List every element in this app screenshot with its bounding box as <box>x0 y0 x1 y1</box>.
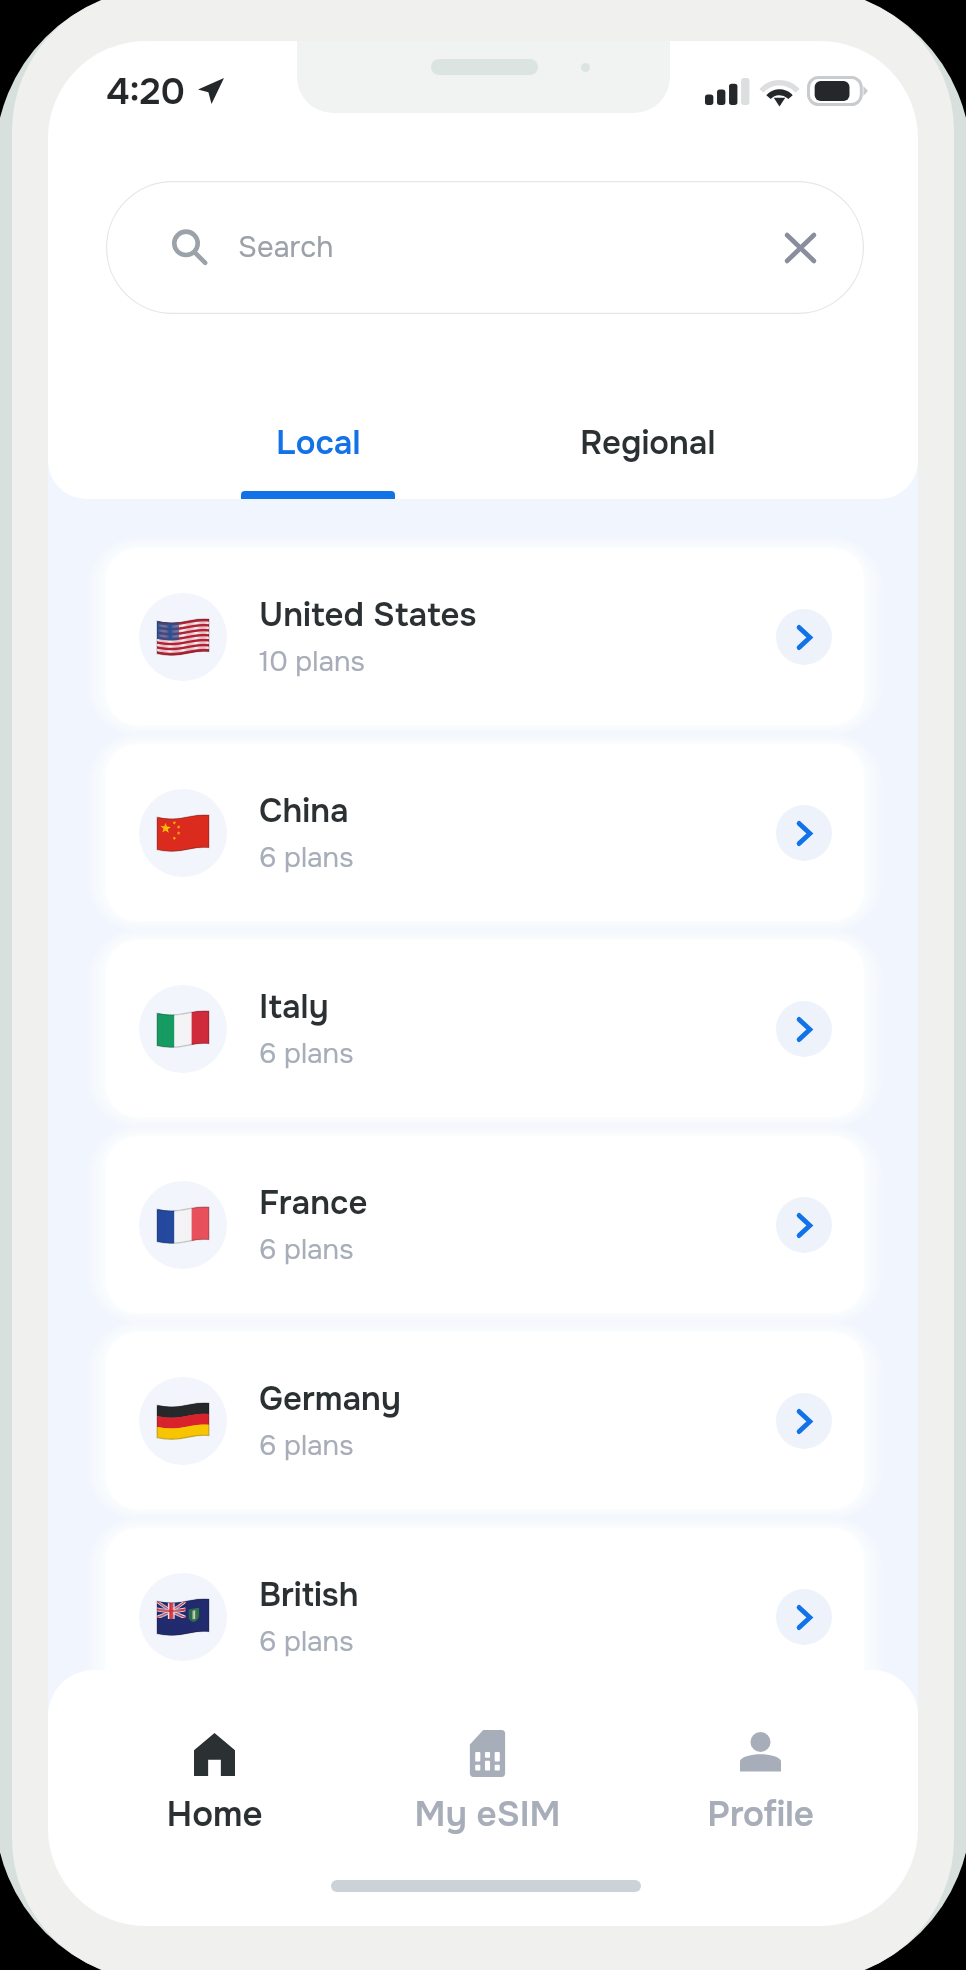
button[interactable]: Open Italy <box>776 1001 832 1057</box>
button[interactable]: United States <box>106 548 864 725</box>
staticText: 6 plans <box>259 1428 354 1464</box>
staticText: 6 plans <box>259 1624 354 1660</box>
button[interactable]: Open Germany <box>776 1393 832 1449</box>
button[interactable]: Open United States <box>776 609 832 665</box>
staticText: Profile <box>707 1792 814 1837</box>
staticText: My eSIM <box>414 1792 561 1837</box>
staticText: Germany <box>259 1378 401 1420</box>
button[interactable]: British <box>106 1528 864 1705</box>
button[interactable]: Italy <box>106 940 864 1117</box>
button[interactable]: Home <box>78 1730 351 1837</box>
staticText: Search <box>238 229 334 266</box>
staticText: 6 plans <box>259 1232 354 1268</box>
button[interactable]: My eSIM <box>351 1730 624 1837</box>
button[interactable]: Open China <box>776 805 832 861</box>
staticText: 6 plans <box>259 1036 354 1072</box>
staticText: 10 plans <box>259 644 365 680</box>
staticText: Regional <box>580 422 716 464</box>
staticText: United States <box>259 594 477 636</box>
staticText: 4:20 <box>106 68 185 115</box>
button[interactable]: Local <box>153 422 483 499</box>
staticText: China <box>259 790 349 832</box>
button[interactable]: Open France <box>776 1197 832 1253</box>
button[interactable]: Regional <box>483 422 813 499</box>
button[interactable]: Germany <box>106 1332 864 1509</box>
staticText: France <box>259 1182 368 1224</box>
button[interactable]: Search <box>106 181 864 314</box>
button[interactable]: Clear search <box>778 226 822 270</box>
button[interactable]: Open British <box>776 1589 832 1645</box>
staticText: 6 plans <box>259 840 354 876</box>
button[interactable]: China <box>106 744 864 921</box>
staticText: Home <box>166 1792 263 1837</box>
staticText: Italy <box>259 986 329 1028</box>
staticText: Local <box>276 422 361 464</box>
staticText: British <box>259 1574 359 1616</box>
button[interactable]: France <box>106 1136 864 1313</box>
button[interactable]: Profile <box>624 1730 897 1837</box>
